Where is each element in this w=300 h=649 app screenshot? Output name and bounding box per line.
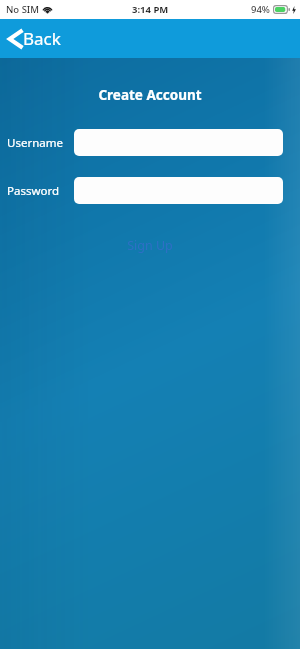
staticText: Username <box>7 135 63 151</box>
other: Back <box>8 29 22 49</box>
staticText: 3:14 PM <box>132 3 169 16</box>
staticText: Password <box>7 183 60 199</box>
button[interactable]: Sign Up <box>0 237 300 254</box>
button[interactable]: Password <box>74 177 283 204</box>
staticText: Sign Up <box>127 237 173 254</box>
staticText: Create Account <box>0 86 300 104</box>
button[interactable]: Username <box>74 129 283 156</box>
staticText: No SIM <box>6 3 39 16</box>
staticText: Back <box>23 27 61 50</box>
staticText: 94% <box>251 3 270 16</box>
button[interactable]: Back <box>0 19 73 58</box>
